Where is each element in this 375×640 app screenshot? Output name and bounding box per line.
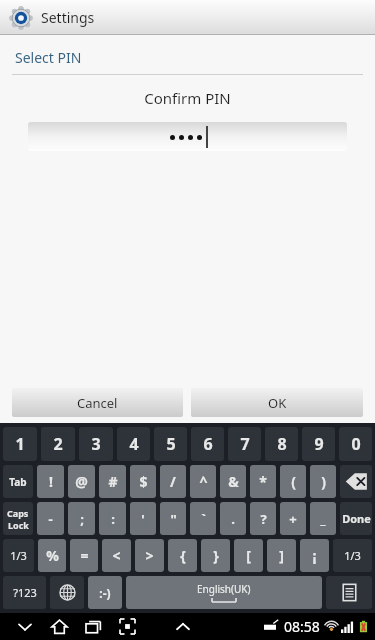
staticText: ' bbox=[141, 510, 145, 528]
staticText: * bbox=[259, 472, 267, 491]
staticText: # bbox=[108, 472, 118, 491]
button[interactable]: 2 bbox=[41, 427, 75, 461]
button[interactable]: 5 bbox=[154, 427, 187, 461]
button[interactable]: Change language bbox=[50, 576, 84, 609]
button[interactable]: 0 bbox=[339, 427, 372, 461]
staticText: ( bbox=[291, 472, 296, 491]
staticText: } bbox=[213, 546, 219, 565]
staticText: : bbox=[111, 510, 115, 528]
button[interactable]: ? bbox=[250, 502, 276, 535]
staticText: Done bbox=[342, 511, 371, 526]
staticText: Settings bbox=[41, 8, 95, 27]
button[interactable]: ] bbox=[267, 539, 296, 572]
button[interactable]: - bbox=[37, 502, 64, 535]
button[interactable]: ^ bbox=[190, 465, 216, 498]
staticText: English(UK) bbox=[197, 582, 251, 596]
staticText: ¡ bbox=[312, 546, 317, 565]
staticText: 2 bbox=[53, 433, 63, 455]
staticText: OK bbox=[268, 394, 287, 412]
button[interactable]: } bbox=[201, 539, 230, 572]
staticText: + bbox=[289, 510, 297, 528]
staticText: 8 bbox=[277, 433, 287, 455]
button[interactable]: Recent apps bbox=[76, 613, 110, 640]
button[interactable]: 1/3 bbox=[3, 539, 34, 572]
button[interactable]: Screenshot bbox=[110, 613, 144, 640]
staticText: 3 bbox=[91, 433, 101, 455]
button[interactable]: 4 bbox=[117, 427, 150, 461]
button[interactable]: ?123 bbox=[3, 576, 46, 609]
staticText: 1 bbox=[15, 433, 25, 455]
button[interactable]: 7 bbox=[228, 427, 261, 461]
staticText: < bbox=[112, 546, 121, 565]
staticText: Caps bbox=[7, 507, 29, 519]
button[interactable]: Home bbox=[42, 613, 76, 640]
button[interactable]: :-) bbox=[88, 576, 122, 609]
staticText: Confirm PIN bbox=[0, 88, 375, 108]
button[interactable]: + bbox=[280, 502, 306, 535]
button[interactable]: ` bbox=[190, 502, 216, 535]
other: Clipboard bbox=[340, 583, 359, 602]
button[interactable]: English(UK) bbox=[126, 576, 322, 609]
staticText: 08:58 bbox=[284, 617, 320, 636]
staticText: 1/3 bbox=[344, 548, 361, 563]
button[interactable]: ) bbox=[310, 465, 336, 498]
button[interactable]: 3 bbox=[79, 427, 113, 461]
button[interactable] bbox=[28, 122, 347, 151]
button[interactable]: 1 bbox=[3, 427, 37, 461]
button[interactable]: . bbox=[220, 502, 246, 535]
button[interactable]: _ bbox=[310, 502, 336, 535]
staticText: ] bbox=[279, 546, 284, 565]
staticText: 9 bbox=[314, 433, 324, 455]
staticText: - bbox=[48, 510, 53, 528]
button[interactable]: ! bbox=[37, 465, 64, 498]
staticText: " bbox=[170, 510, 177, 528]
button[interactable]: " bbox=[160, 502, 186, 535]
button[interactable]: Clipboard bbox=[326, 576, 372, 609]
button[interactable]: % bbox=[38, 539, 66, 572]
staticText: [ bbox=[246, 546, 251, 565]
staticText: % bbox=[46, 546, 59, 565]
staticText: Select PIN bbox=[15, 48, 82, 67]
button[interactable]: Cancel bbox=[12, 388, 183, 417]
staticText: ?123 bbox=[13, 585, 37, 600]
staticText: Lock bbox=[8, 519, 29, 531]
button[interactable]: OK bbox=[191, 388, 363, 417]
staticText: ^ bbox=[199, 472, 208, 491]
staticText: $ bbox=[139, 472, 148, 491]
button[interactable]: Backspace bbox=[340, 465, 372, 498]
button[interactable]: ' bbox=[130, 502, 156, 535]
button[interactable]: = bbox=[70, 539, 98, 572]
button[interactable]: @ bbox=[68, 465, 95, 498]
button[interactable]: Caps bbox=[3, 502, 33, 535]
button[interactable]: { bbox=[168, 539, 197, 572]
button[interactable]: * bbox=[250, 465, 276, 498]
staticText: / bbox=[170, 472, 176, 491]
staticText: 0 bbox=[351, 433, 361, 455]
button[interactable]: 1/3 bbox=[333, 539, 372, 572]
button[interactable]: ; bbox=[68, 502, 95, 535]
button[interactable]: 8 bbox=[265, 427, 298, 461]
button[interactable]: & bbox=[220, 465, 246, 498]
button[interactable]: > bbox=[135, 539, 164, 572]
button[interactable]: $ bbox=[130, 465, 156, 498]
staticText: 7 bbox=[240, 433, 250, 455]
button[interactable]: 6 bbox=[191, 427, 224, 461]
button[interactable]: : bbox=[99, 502, 126, 535]
button[interactable]: Tab bbox=[3, 465, 33, 498]
staticText: ` bbox=[201, 510, 206, 528]
button[interactable]: ¡ bbox=[300, 539, 329, 572]
staticText: ! bbox=[49, 472, 53, 491]
button[interactable]: [ bbox=[234, 539, 263, 572]
button[interactable]: 9 bbox=[302, 427, 335, 461]
button[interactable]: Back bbox=[8, 613, 42, 640]
button[interactable]: Done bbox=[340, 502, 372, 535]
staticText: _ bbox=[320, 510, 326, 528]
staticText: ; bbox=[80, 510, 84, 528]
button[interactable]: ( bbox=[280, 465, 306, 498]
button[interactable]: / bbox=[160, 465, 186, 498]
staticText: 6 bbox=[203, 433, 213, 455]
button[interactable]: # bbox=[99, 465, 126, 498]
staticText: & bbox=[228, 472, 239, 491]
button[interactable]: < bbox=[102, 539, 131, 572]
button[interactable]: Expand bbox=[166, 613, 200, 640]
